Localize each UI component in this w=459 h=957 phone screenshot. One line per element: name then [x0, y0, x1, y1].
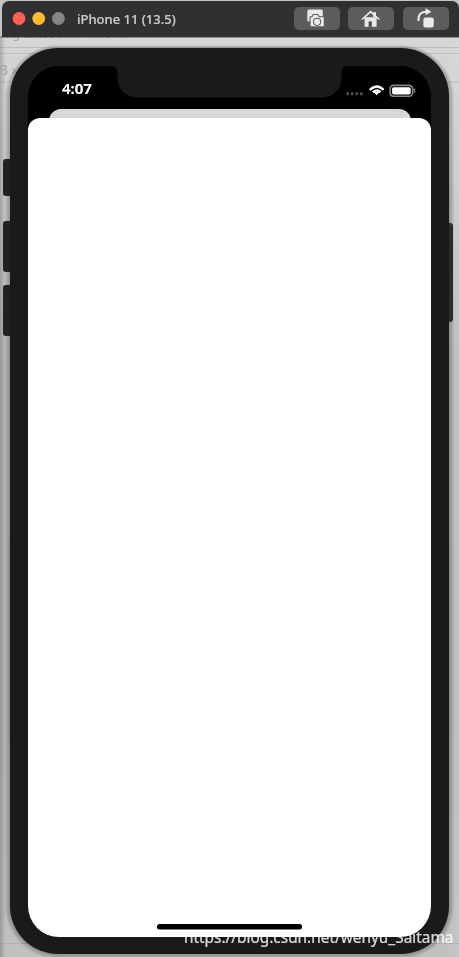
- staticText: 4:07: [62, 78, 92, 98]
- button[interactable]: Share: [403, 7, 449, 30]
- staticText: B ›: [0, 60, 17, 79]
- staticText: ng tested on iPhone 11: [6, 26, 126, 41]
- staticText: https://blog.csdn.net/wenyu_Saitama: [184, 927, 454, 948]
- staticText: iPhone 11 (13.5): [77, 10, 176, 28]
- button[interactable]: Home: [348, 7, 394, 30]
- button[interactable]: Screenshot: [294, 7, 340, 30]
